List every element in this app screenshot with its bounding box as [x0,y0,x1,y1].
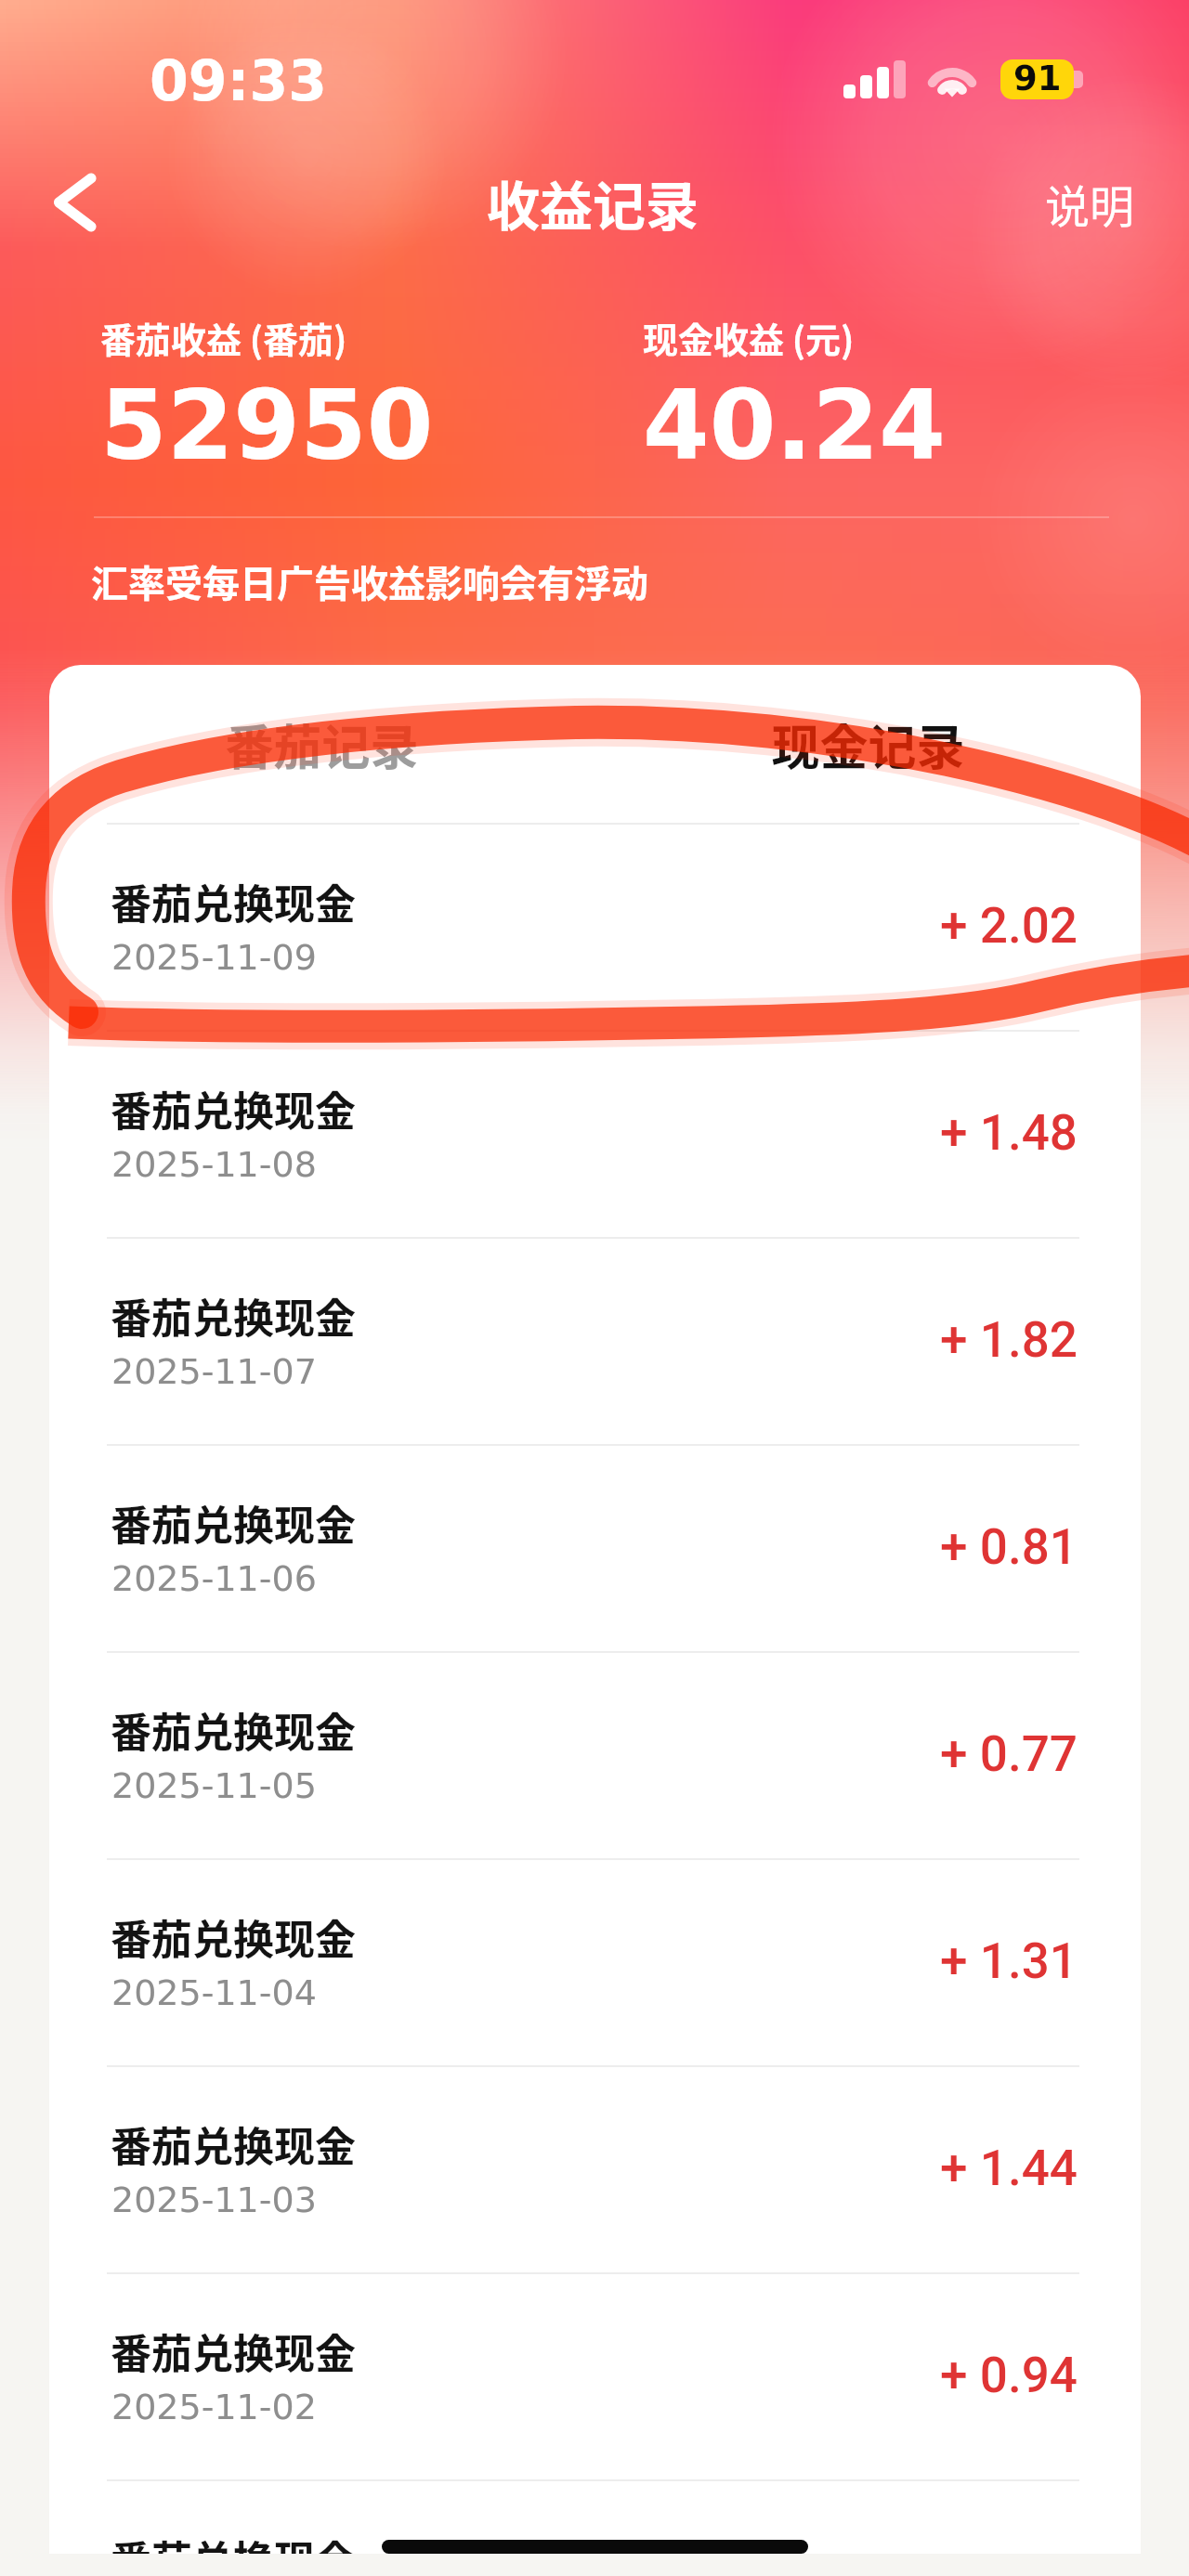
staticText: 收益记录 [487,164,699,241]
staticText: 2025-11-09 [111,937,317,978]
staticText: 番茄兑换现金 [111,2322,356,2381]
staticText: 现金收益 (元) [643,312,855,363]
staticText: 番茄兑换现金 [111,872,356,931]
staticText: 番茄兑换现金 [111,1907,356,1967]
staticText: 番茄兑换现金 [111,1700,356,1760]
staticText: 现金记录 [771,709,965,779]
staticText: 番茄兑换现金 [111,1079,356,1138]
staticText: + 1.82 [940,1311,1078,1369]
staticText: 说明 [1045,171,1135,236]
button[interactable]: 说明 [1023,150,1157,256]
staticText: 番茄收益 (番茄) [100,312,347,363]
staticText: 40.24 [643,370,946,481]
button[interactable]: 番茄兑换现金 [49,1651,1141,1858]
staticText: + 2.02 [940,897,1078,955]
staticText: 09:33 [150,48,327,113]
staticText: 2025-11-04 [111,1972,317,2013]
button[interactable]: 番茄兑换现金 [49,823,1141,1030]
button[interactable]: 番茄兑换现金 [49,1030,1141,1237]
staticText: 52950 [100,370,434,481]
staticText: 2025-11-06 [111,1558,317,1599]
button[interactable]: 番茄兑换现金 [49,2065,1141,2272]
button[interactable]: 番茄兑换现金 [49,1444,1141,1651]
button[interactable]: 番茄兑换现金 [49,2479,1141,2554]
staticText: + 0.81 [940,1518,1078,1576]
button[interactable]: 番茄兑换现金 [49,2272,1141,2479]
button[interactable]: 番茄兑换现金 [49,1237,1141,1444]
staticText: 番茄兑换现金 [111,2114,356,2174]
staticText: 番茄记录 [225,709,419,779]
staticText: 91 [1013,59,1062,98]
staticText: 2025-11-02 [111,2387,317,2427]
staticText: 2025-11-05 [111,1765,317,1806]
staticText: 番茄兑换现金 [111,1493,356,1553]
staticText: 2025-11-08 [111,1144,317,1185]
staticText: 番茄兑换现金 [111,2529,356,2554]
staticText: + 1.44 [940,2140,1078,2197]
staticText: + 0.94 [940,2347,1078,2404]
staticText: 2025-11-07 [111,1351,317,1392]
button[interactable]: 番茄兑换现金 [49,1858,1141,2065]
button[interactable]: 番茄记录 [49,665,594,823]
staticText: 2025-11-03 [111,2179,317,2220]
button[interactable]: Back [22,149,130,256]
staticText: + 0.77 [940,1725,1078,1783]
button[interactable]: 现金记录 [594,665,1141,823]
staticText: 番茄兑换现金 [111,1286,356,1346]
staticText: + 1.48 [940,1104,1078,1162]
staticText: 汇率受每日广告收益影响会有浮动 [91,554,648,608]
staticText: + 1.31 [940,1932,1078,1990]
